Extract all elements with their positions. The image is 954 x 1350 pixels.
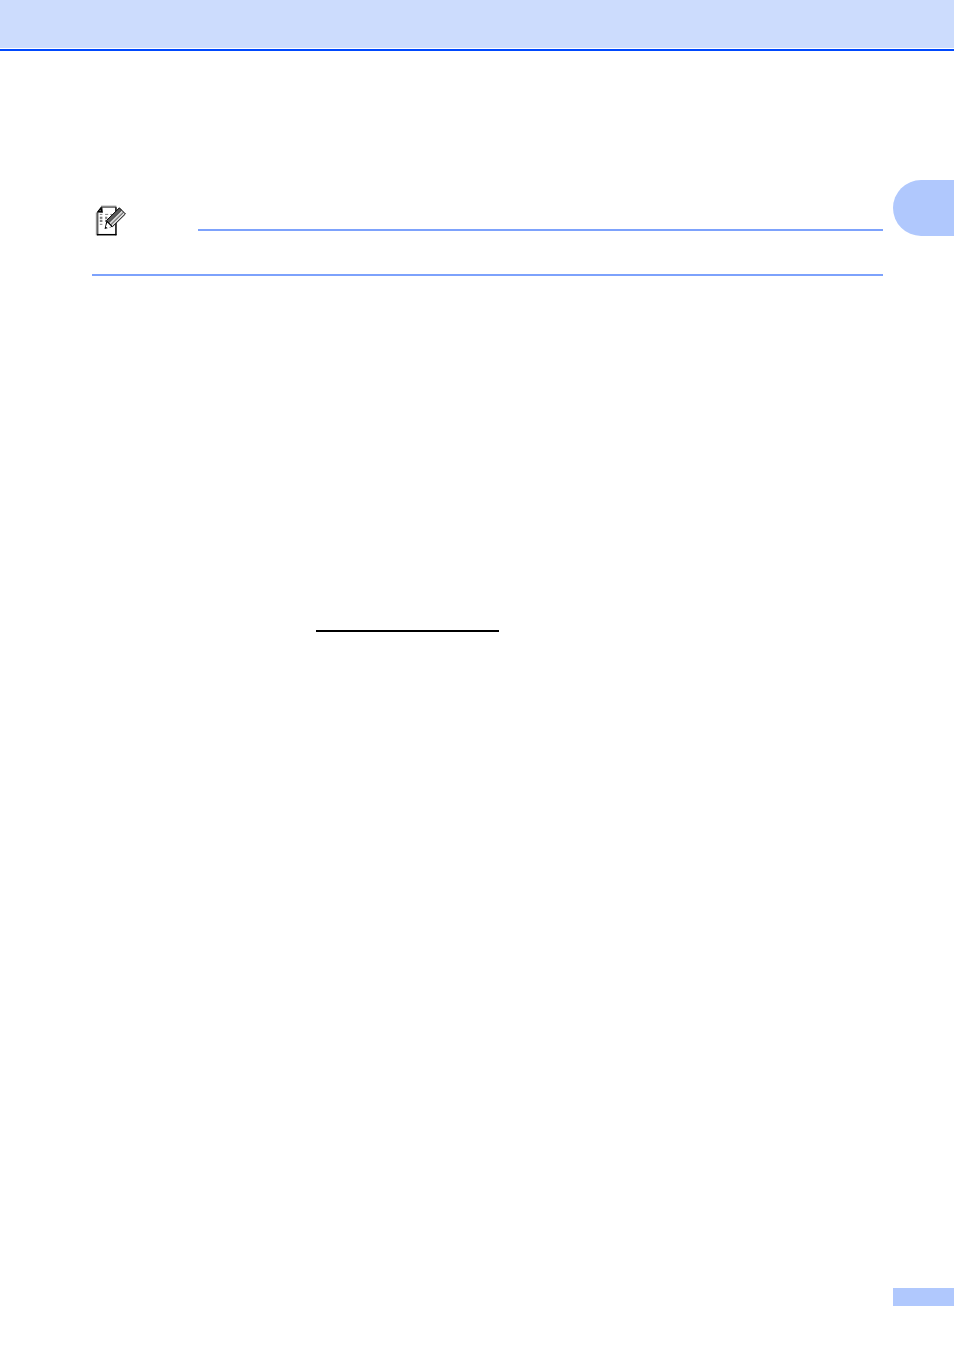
button[interactable]: Chapter tab xyxy=(893,180,954,236)
button[interactable]: Note xyxy=(94,204,128,238)
